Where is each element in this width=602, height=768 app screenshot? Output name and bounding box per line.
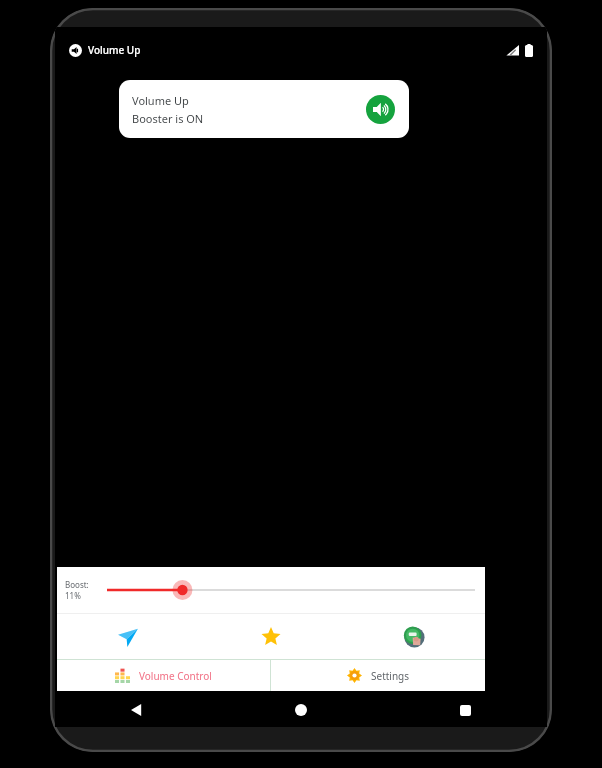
button[interactable]: Settings [271, 660, 485, 691]
staticText: Volume Control [139, 669, 212, 683]
button[interactable]: Buy premium [342, 614, 485, 659]
staticText: Volume Up [88, 43, 141, 57]
button[interactable]: Back [55, 693, 219, 727]
button[interactable]: Home [219, 693, 383, 727]
button[interactable]: Recent apps [383, 693, 547, 727]
staticText: Boost: [65, 579, 89, 590]
button[interactable]: Volume Control [57, 660, 270, 691]
staticText: 11% [65, 590, 81, 601]
button[interactable] [107, 576, 475, 604]
button[interactable]: Rate app [199, 614, 342, 659]
button[interactable]: Share [57, 614, 199, 659]
button[interactable]: Volume booster active [366, 95, 395, 124]
staticText: Booster is ON [132, 111, 204, 126]
staticText: Settings [371, 669, 410, 683]
button[interactable]: Volume Up [119, 80, 409, 138]
staticText: Volume Up [132, 93, 189, 108]
